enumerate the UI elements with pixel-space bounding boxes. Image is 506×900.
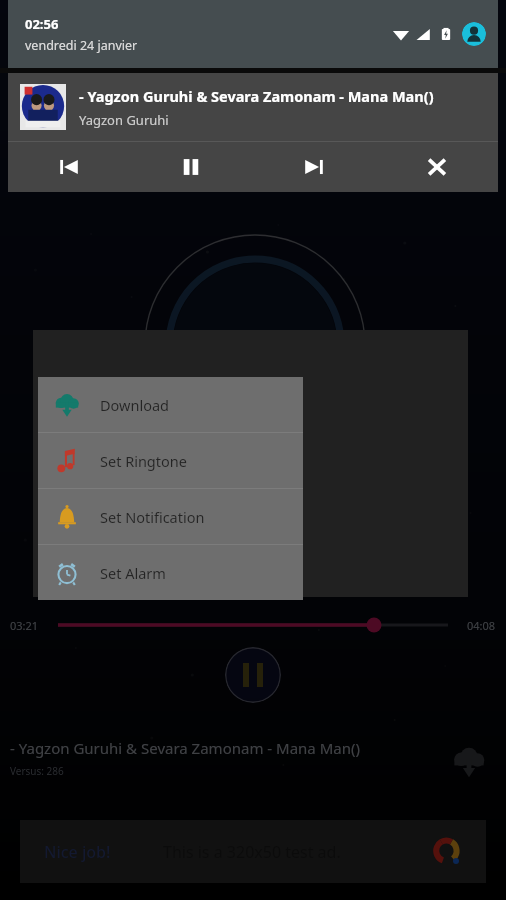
button[interactable]: Set Ringtone (38, 433, 303, 488)
button[interactable]: Download (447, 740, 491, 784)
staticText: 02:56 (25, 15, 59, 33)
staticText: 04:08 (467, 618, 496, 633)
staticText: Download (100, 395, 169, 415)
staticText: - Yagzon Guruhi & Sevara Zamonam - Mana … (10, 738, 360, 758)
button[interactable]: Pause (130, 142, 252, 192)
button[interactable]: Set Notification (38, 489, 303, 544)
button[interactable]: Nice job! (20, 820, 486, 883)
button[interactable]: Download (38, 377, 303, 432)
button[interactable]: Close (375, 142, 498, 192)
button[interactable]: Account (462, 22, 486, 46)
staticText: Nice job! (44, 841, 111, 863)
button[interactable]: Previous (8, 142, 130, 192)
staticText: Set Alarm (100, 563, 166, 583)
button[interactable]: Next (252, 142, 375, 192)
staticText: vendredi 24 janvier (25, 37, 138, 54)
staticText: Set Ringtone (100, 451, 187, 471)
button[interactable]: Set Alarm (38, 545, 303, 600)
button[interactable] (0, 605, 506, 645)
staticText: 03:21 (10, 618, 39, 633)
staticText: Yagzon Guruhi (79, 111, 169, 129)
button[interactable]: - Yagzon Guruhi & Sevara Zamonam - Mana … (8, 73, 498, 192)
staticText: Versus: 286 (10, 764, 64, 778)
staticText: Set Notification (100, 507, 205, 527)
staticText: - Yagzon Guruhi & Sevara Zamonam - Mana … (79, 86, 434, 106)
button[interactable]: Pause (225, 647, 281, 703)
